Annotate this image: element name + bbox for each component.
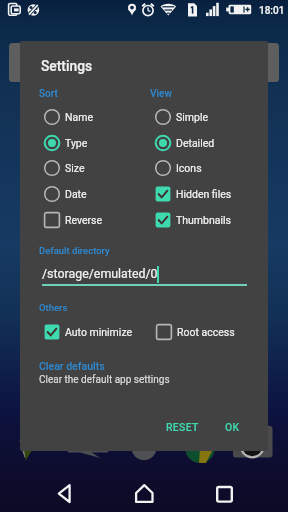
button[interactable]: Type [41, 132, 88, 154]
staticText: OK [225, 421, 240, 433]
staticText: Root access [177, 326, 235, 338]
button[interactable]: RESET [157, 414, 207, 440]
staticText: RESET [166, 421, 199, 433]
button[interactable]: Hidden files [152, 183, 232, 205]
staticText: Others [39, 302, 68, 313]
button[interactable]: Icons [152, 157, 202, 179]
button[interactable]: Recent apps [208, 478, 240, 510]
staticText: Detailed [176, 137, 215, 149]
staticText: Sort [39, 88, 58, 100]
staticText: Hidden files [176, 188, 232, 200]
staticText: /storage/emulated/0 [42, 266, 158, 281]
button[interactable]: Back [49, 478, 81, 510]
staticText: Date [65, 188, 87, 200]
button[interactable]: Simple [152, 106, 209, 128]
staticText: Clear the default app settings [39, 374, 170, 386]
staticText: 18:01 [259, 5, 285, 17]
button[interactable]: Date [41, 183, 87, 205]
staticText: Settings [41, 58, 93, 74]
staticText: Auto minimize [65, 326, 133, 338]
button[interactable]: Detailed [152, 132, 215, 154]
staticText: Size [65, 162, 85, 174]
button[interactable]: Name [41, 106, 93, 128]
staticText: Type [65, 137, 88, 149]
staticText: Name [65, 111, 93, 123]
staticText: Default directory [39, 245, 110, 256]
staticText: Thumbnails [176, 214, 231, 226]
staticText: Reverse [65, 214, 103, 226]
button[interactable]: Home [128, 478, 160, 510]
button[interactable]: Reverse [41, 209, 103, 231]
button[interactable]: Auto minimize [41, 321, 133, 343]
staticText: Clear defaults [39, 360, 105, 372]
staticText: Simple [176, 111, 209, 123]
staticText: Icons [176, 162, 202, 174]
button[interactable]: Clear defaults [39, 360, 170, 386]
button[interactable]: Thumbnails [152, 209, 231, 231]
button[interactable]: OK [214, 414, 250, 440]
button[interactable]: Root access [153, 321, 235, 343]
button[interactable]: Size [41, 157, 85, 179]
staticText: View [150, 88, 172, 100]
